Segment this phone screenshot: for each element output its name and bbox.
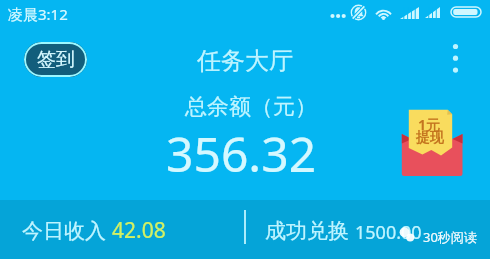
staticText: 任务大厅 [197,46,293,76]
button[interactable]: 今日收入 [0,200,244,259]
staticText: 成功兑换 [265,216,355,245]
staticText: 30秒阅读 [423,228,477,246]
staticText: 今日收入 [22,216,112,245]
staticText: 42.08 [112,216,166,245]
button[interactable]: 签到 [24,42,87,77]
staticText: 提现 [416,129,444,147]
staticText: 凌晨3:12 [8,4,68,24]
staticText: 总余额（元） [185,93,317,121]
staticText: 1500.00 [355,220,422,245]
staticText: 1元 [418,115,441,134]
button[interactable]: 成功兑换 [246,200,490,259]
button[interactable]: Withdraw 1 yuan red packet [400,106,466,180]
staticText: 签到 [37,48,75,72]
staticText: 356.32 [166,121,317,186]
button[interactable]: More options [441,34,471,88]
